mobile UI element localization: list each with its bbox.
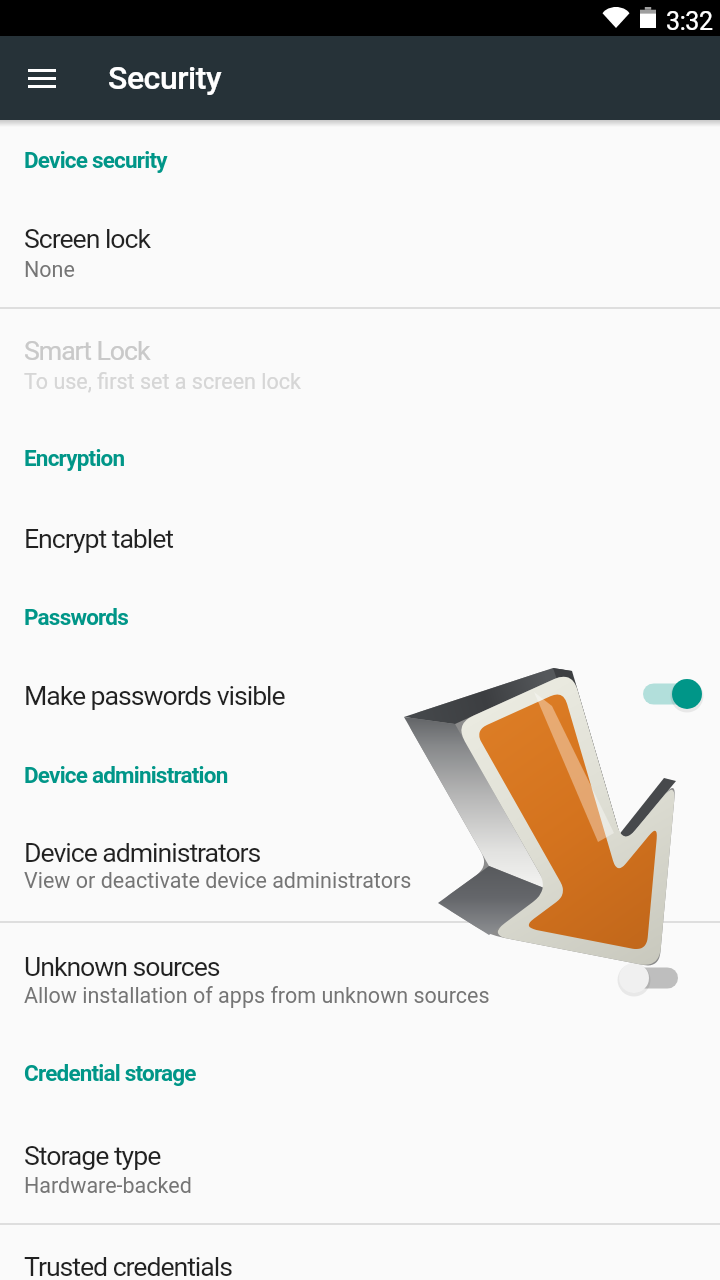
staticText: Passwords [24,604,128,630]
staticText: To use, first set a screen lock [24,369,301,394]
staticText: Hardware-backed [24,1173,192,1198]
button[interactable] [0,815,720,921]
button[interactable]: Switch off [622,950,686,1006]
button[interactable] [0,657,720,733]
staticText: Device administration [24,762,228,788]
staticText: Device security [24,147,167,173]
staticText: Make passwords visible [24,680,285,711]
staticText: Encryption [24,445,125,471]
staticText: Storage type [24,1140,161,1171]
staticText: Screen lock [24,223,150,254]
button[interactable] [0,1226,720,1280]
staticText: Credential storage [24,1060,196,1086]
button[interactable]: Switch on [635,666,699,722]
staticText: Trusted credentials [24,1251,232,1280]
button[interactable] [0,925,720,1031]
button[interactable] [0,310,720,418]
staticText: Allow installation of apps from unknown … [24,983,490,1008]
staticText: None [24,257,75,282]
staticText: Encrypt tablet [24,523,174,554]
staticText: Unknown sources [24,951,220,982]
button[interactable]: Open navigation drawer [18,54,66,102]
staticText: 3:32 [666,7,713,36]
staticText: Device administrators [24,837,261,868]
staticText: View or deactivate device administrators [24,868,412,893]
button[interactable] [0,1118,720,1223]
staticText: Security [108,59,222,97]
staticText: Smart Lock [24,335,150,366]
button[interactable] [0,200,720,308]
button[interactable] [0,500,720,576]
